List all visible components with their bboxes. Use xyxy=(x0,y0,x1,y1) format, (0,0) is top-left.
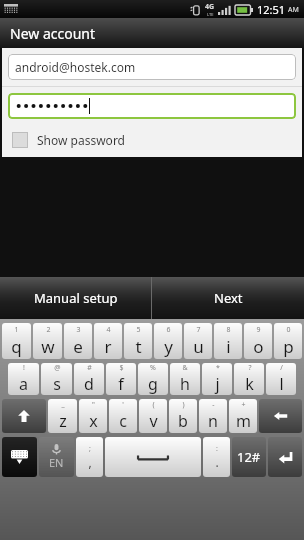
staticText: 8 xyxy=(226,325,231,335)
staticText: $ xyxy=(119,363,124,373)
staticText: @ xyxy=(54,363,61,373)
button[interactable]: Next xyxy=(152,277,304,319)
staticText: t xyxy=(135,335,142,358)
button[interactable]: 9 xyxy=(244,323,272,359)
button[interactable]: ' xyxy=(109,399,137,433)
staticText: v xyxy=(149,410,158,432)
button[interactable]: 7 xyxy=(184,323,212,359)
button[interactable]: 8 xyxy=(214,323,242,359)
button[interactable]: Hide keyboard xyxy=(2,437,37,477)
staticText: ( xyxy=(152,400,155,410)
staticText: # xyxy=(87,363,92,373)
staticText: k xyxy=(245,373,254,395)
button[interactable]: / xyxy=(266,363,296,395)
button[interactable]: ) xyxy=(169,399,197,433)
staticText: z xyxy=(59,410,67,432)
button[interactable]: Shift xyxy=(2,399,46,433)
staticText: Manual setup xyxy=(34,289,118,307)
button[interactable]: 12# xyxy=(232,437,266,477)
staticText: g xyxy=(148,373,158,395)
staticText: Next xyxy=(214,289,243,307)
button[interactable]: ( xyxy=(139,399,167,433)
button[interactable]: ? xyxy=(234,363,264,395)
button[interactable]: 1 xyxy=(2,323,31,359)
staticText: 9 xyxy=(256,325,261,335)
button[interactable]: ! xyxy=(8,363,39,395)
staticText: y xyxy=(164,335,173,358)
button[interactable]: Show password xyxy=(2,125,302,155)
staticText: b xyxy=(178,410,188,432)
staticText: _ xyxy=(61,400,65,410)
staticText: 12# xyxy=(237,448,261,466)
button[interactable] xyxy=(8,93,296,119)
button[interactable]: - xyxy=(199,399,227,433)
staticText: u xyxy=(193,335,204,358)
staticText: ' xyxy=(122,400,124,410)
button[interactable]: Voice input EN xyxy=(39,437,74,477)
staticText: q xyxy=(11,335,22,358)
button[interactable]: ; xyxy=(76,437,103,477)
staticText: p xyxy=(283,335,294,358)
staticText: d xyxy=(84,373,94,395)
staticText: r xyxy=(104,335,112,358)
staticText: 4G xyxy=(205,2,215,12)
button[interactable]: + xyxy=(229,399,257,433)
staticText: AM xyxy=(288,5,299,15)
staticText: e xyxy=(73,335,83,358)
button[interactable]: 2 xyxy=(33,323,62,359)
button[interactable]: Space xyxy=(105,437,201,477)
button[interactable]: Backspace xyxy=(259,399,302,433)
button[interactable]: * xyxy=(202,363,232,395)
staticText: h xyxy=(180,373,190,395)
staticText: s xyxy=(53,373,61,395)
staticText: x xyxy=(89,410,98,432)
staticText: Show password xyxy=(37,132,125,148)
staticText: & xyxy=(182,363,188,373)
staticText: a xyxy=(19,373,28,395)
button[interactable]: @ xyxy=(41,363,72,395)
staticText: " xyxy=(92,400,95,410)
staticText: f xyxy=(118,373,124,395)
button[interactable]: & xyxy=(170,363,200,395)
staticText: LTE xyxy=(207,12,214,17)
staticText: - xyxy=(212,400,215,410)
button[interactable]: 0 xyxy=(274,323,302,359)
staticText: i xyxy=(226,335,231,358)
button[interactable]: _ xyxy=(48,399,77,433)
staticText: New account xyxy=(10,24,96,43)
staticText: % xyxy=(150,363,156,373)
button[interactable]: 3 xyxy=(64,323,92,359)
staticText: 2 xyxy=(46,325,51,335)
button[interactable]: Manual setup xyxy=(0,277,151,319)
staticText: 0 xyxy=(286,325,291,335)
staticText: 1 xyxy=(14,325,19,335)
button[interactable]: 5 xyxy=(124,323,152,359)
button[interactable]: : xyxy=(203,437,230,477)
staticText: android@hostek.com xyxy=(15,59,136,75)
staticText: , xyxy=(88,454,92,470)
staticText: m xyxy=(236,410,251,432)
staticText: ? xyxy=(248,363,252,373)
staticText: + xyxy=(241,400,246,410)
button[interactable]: android@hostek.com xyxy=(8,54,296,80)
staticText: EN xyxy=(49,455,64,470)
staticText: 4 xyxy=(106,325,111,335)
staticText: ) xyxy=(182,400,185,410)
staticText: w xyxy=(41,335,55,358)
button[interactable]: " xyxy=(79,399,107,433)
staticText: j xyxy=(215,373,220,395)
button[interactable]: New account xyxy=(0,18,304,48)
staticText: ; xyxy=(89,444,91,454)
staticText: . xyxy=(215,454,219,470)
button[interactable]: $ xyxy=(106,363,136,395)
button[interactable]: % xyxy=(138,363,168,395)
staticText: / xyxy=(280,363,283,373)
staticText: ! xyxy=(23,363,25,373)
button[interactable]: Enter xyxy=(268,437,302,477)
button[interactable]: # xyxy=(74,363,104,395)
staticText: : xyxy=(216,444,218,454)
staticText: 7 xyxy=(196,325,201,335)
button[interactable]: 6 xyxy=(154,323,182,359)
button[interactable]: 4 xyxy=(94,323,122,359)
staticText: 5 xyxy=(136,325,141,335)
